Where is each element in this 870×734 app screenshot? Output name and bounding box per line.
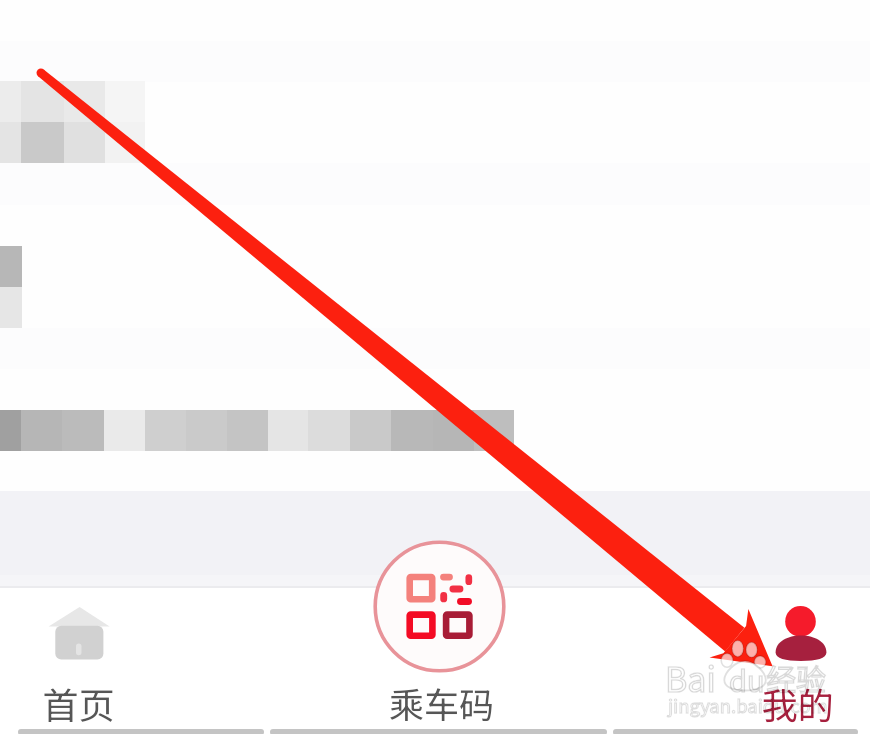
staticText: 乘车码 (270, 677, 613, 728)
other: 乘车码 (371, 538, 508, 675)
staticText: jingyan.baidu.com (668, 692, 828, 719)
button[interactable]: 乘车码 (270, 539, 613, 734)
staticText: du (729, 658, 765, 700)
button[interactable]: 我的 (613, 588, 870, 729)
staticText: 我的 (719, 677, 870, 729)
button[interactable]: 首页 (0, 588, 264, 729)
staticText: 经验 (766, 656, 826, 699)
staticText: Bai (665, 653, 716, 702)
staticText: 首页 (0, 677, 157, 729)
